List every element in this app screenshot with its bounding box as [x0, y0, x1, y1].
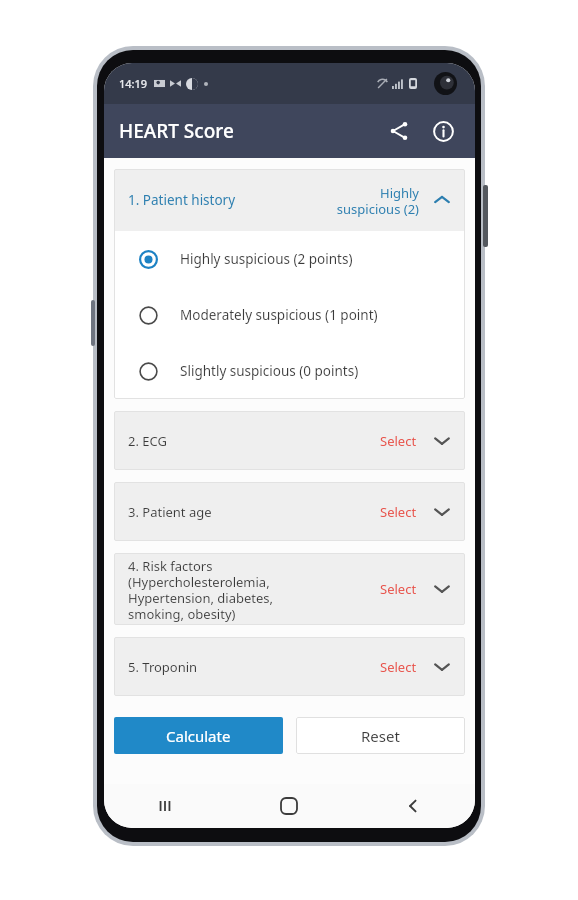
staticText: 14:19 — [119, 76, 148, 91]
staticText: 2. ECG — [128, 432, 380, 450]
staticText: Select — [380, 432, 417, 450]
button[interactable]: Recent apps — [104, 784, 227, 828]
staticText: 5. Troponin — [128, 658, 380, 676]
staticText: Highly suspicious (2 points) — [180, 250, 353, 268]
button[interactable]: 3. Patient age — [114, 482, 465, 541]
staticText: Select — [380, 658, 417, 676]
button[interactable]: Info — [421, 109, 465, 153]
button[interactable]: Home — [227, 784, 351, 828]
button[interactable]: Calculate — [114, 717, 283, 754]
staticText: 1. Patient history — [128, 191, 336, 209]
button[interactable]: Moderately suspicious (1 point) — [114, 287, 465, 343]
staticText: 4. Risk factors (Hypercholesterolemia, H… — [128, 557, 380, 622]
button[interactable]: Share — [377, 109, 421, 153]
button[interactable]: 2. ECG — [114, 411, 465, 470]
button[interactable]: Slightly suspicious (0 points) — [114, 343, 465, 399]
button[interactable]: 1. Patient history — [114, 169, 465, 231]
staticText: Select — [380, 503, 417, 521]
staticText: Slightly suspicious (0 points) — [180, 362, 359, 380]
staticText: 3. Patient age — [128, 503, 380, 521]
button[interactable]: 4. Risk factors (Hypercholesterolemia, H… — [114, 553, 465, 625]
staticText: HEART Score — [119, 118, 234, 144]
button[interactable]: 5. Troponin — [114, 637, 465, 696]
button[interactable]: Highly suspicious (2 points) — [114, 231, 465, 287]
staticText: Calculate — [166, 726, 231, 746]
staticText: Moderately suspicious (1 point) — [180, 306, 378, 324]
button[interactable]: Reset — [296, 717, 465, 754]
staticText: Select — [380, 580, 417, 598]
button[interactable]: Back — [351, 784, 475, 828]
staticText: Reset — [361, 726, 400, 746]
staticText: Highly suspicious (2) — [336, 184, 419, 217]
